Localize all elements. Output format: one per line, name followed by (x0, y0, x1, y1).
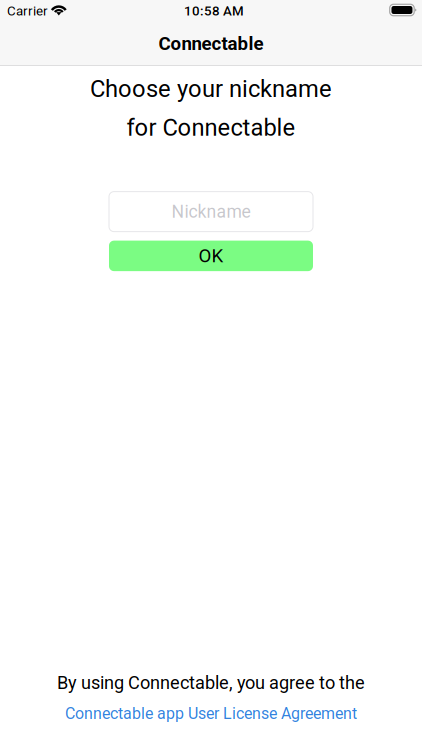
button[interactable]: Connectable app User License Agreement (65, 693, 357, 723)
button[interactable]: OK (109, 241, 313, 271)
staticText: Carrier (7, 3, 48, 19)
staticText: Choose your nickname (90, 75, 332, 103)
staticText: for Connectable (126, 114, 295, 142)
staticText: Connectable app User License Agreement (65, 704, 357, 723)
staticText: Nickname (171, 201, 250, 222)
staticText: Connectable (158, 33, 263, 54)
staticText: OK (198, 245, 223, 267)
staticText: 10:58 AM (184, 3, 244, 19)
staticText: By using Connectable, you agree to the (57, 672, 365, 693)
